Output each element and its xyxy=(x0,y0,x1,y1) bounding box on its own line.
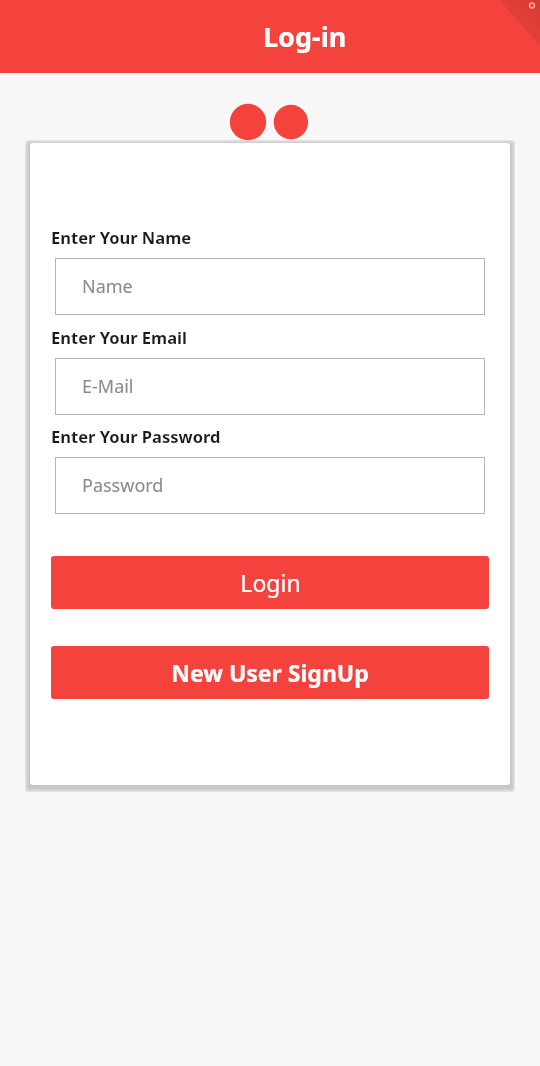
staticText: Login xyxy=(240,567,301,598)
staticText: E-Mail xyxy=(82,374,134,399)
staticText: New User SignUp xyxy=(171,657,369,688)
button[interactable]: Login xyxy=(51,556,489,609)
staticText: Password xyxy=(82,473,164,498)
staticText: Log-in xyxy=(263,18,347,55)
button[interactable]: Name xyxy=(55,258,485,315)
staticText: Enter Your Email xyxy=(51,326,187,348)
other: Users xyxy=(200,100,342,190)
button[interactable]: E-Mail xyxy=(55,358,485,415)
staticText: Name xyxy=(82,274,133,299)
button[interactable]: New User SignUp xyxy=(51,646,489,699)
staticText: Enter Your Name xyxy=(51,226,192,248)
staticText: Enter Your Password xyxy=(51,425,221,447)
button[interactable]: Password xyxy=(55,457,485,514)
